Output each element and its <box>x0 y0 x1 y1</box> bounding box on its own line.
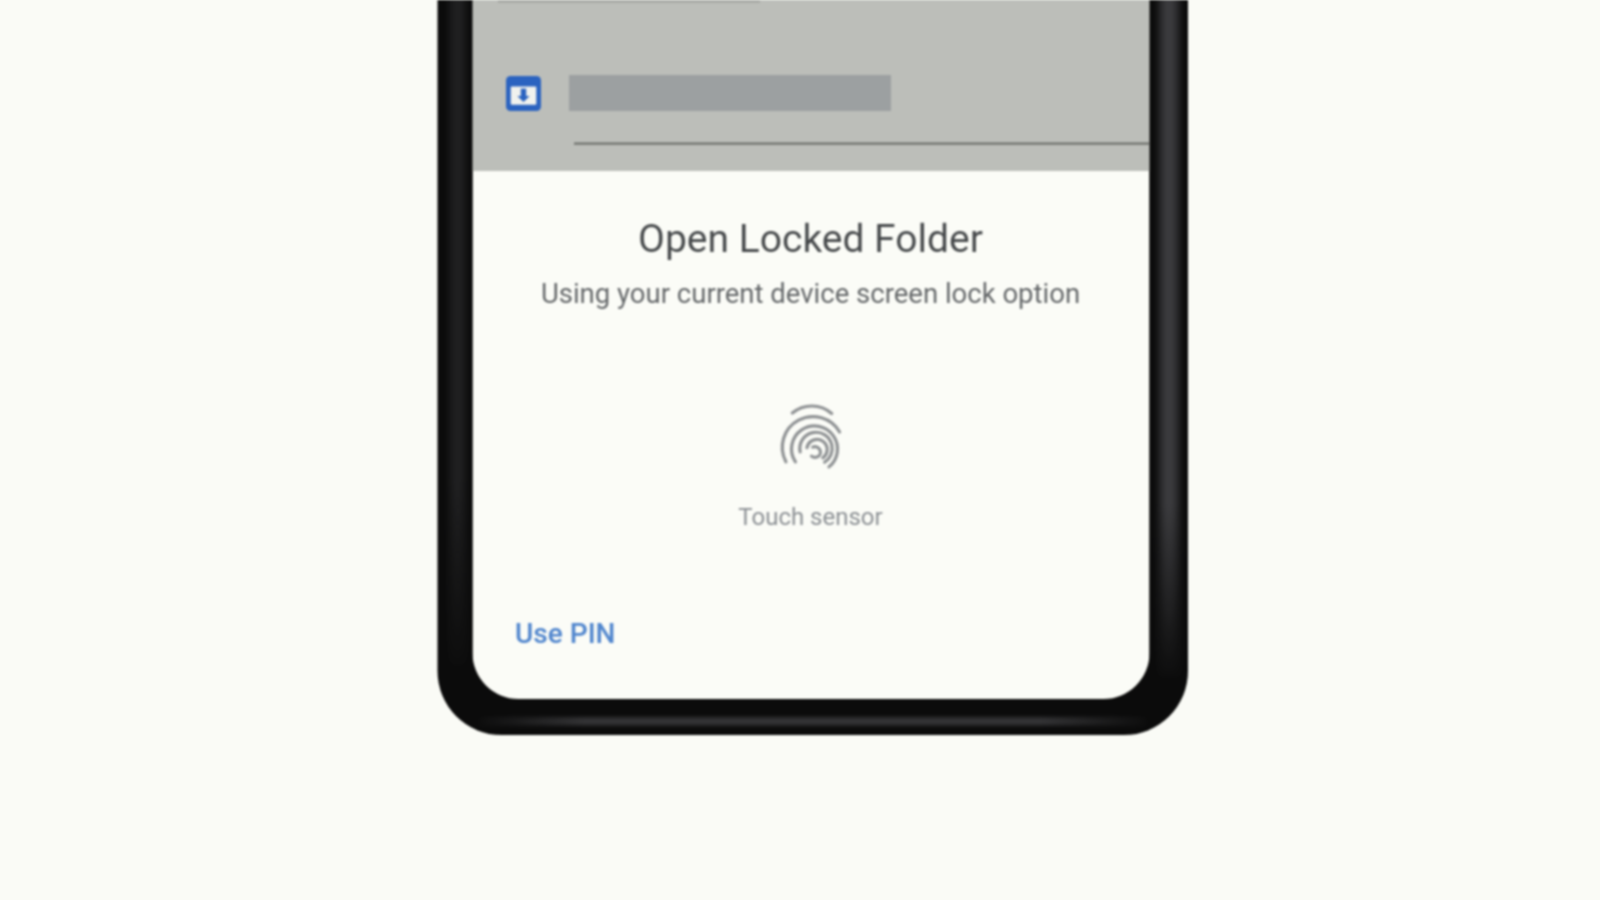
button[interactable]: Archived item <box>498 62 1138 126</box>
staticText: Use PIN <box>515 617 616 650</box>
staticText: Using your current device screen lock op… <box>472 277 1149 309</box>
staticText: Open Locked Folder <box>472 216 1149 262</box>
button[interactable]: Use PIN <box>503 605 628 662</box>
staticText: Touch sensor <box>472 503 1149 531</box>
button[interactable]: Scan fingerprint <box>760 386 865 491</box>
